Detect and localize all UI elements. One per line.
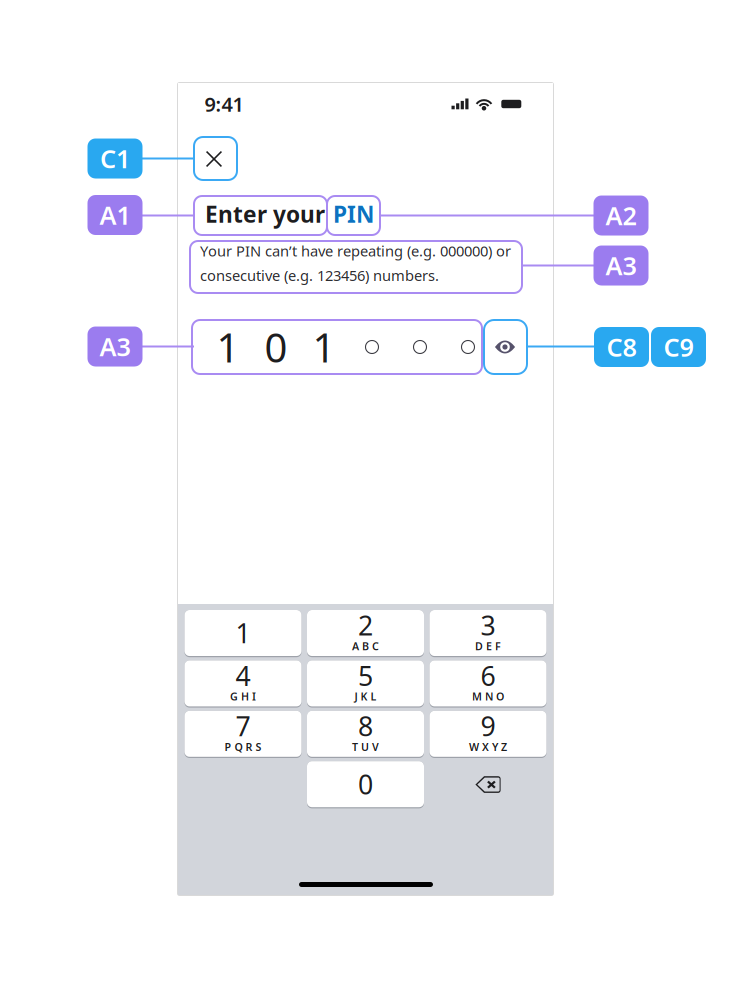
button[interactable]: 8 (307, 711, 424, 758)
staticText: G H I (230, 689, 256, 703)
staticText: 1 (235, 615, 250, 651)
staticText: M N O (472, 689, 504, 703)
button[interactable]: 6 (429, 660, 546, 708)
staticText: A B C (352, 639, 379, 653)
staticText: A3 (605, 249, 636, 282)
staticText: 5 (358, 658, 373, 693)
staticText: Enter your (205, 199, 325, 229)
staticText: 9 (480, 708, 495, 744)
staticText: PIN (333, 199, 374, 229)
staticText: 9:41 (204, 91, 243, 117)
staticText: A2 (605, 199, 636, 232)
staticText: W X Y Z (469, 740, 507, 754)
staticText: 2 (358, 607, 373, 643)
staticText: 1 (216, 320, 239, 373)
button[interactable]: Close (196, 141, 232, 177)
button[interactable]: 4 (184, 660, 301, 708)
staticText: consecutive (e.g. 123456) numbers. (200, 265, 439, 285)
staticText: P Q R S (224, 740, 261, 754)
staticText: 0 (264, 320, 287, 373)
staticText: 0 (358, 766, 373, 802)
staticText: C1 (100, 142, 130, 175)
staticText: T U V (352, 740, 379, 754)
staticText: 6 (480, 658, 495, 693)
staticText: J K L (354, 689, 376, 703)
button[interactable]: Delete (429, 761, 546, 808)
staticText: A1 (99, 198, 130, 232)
staticText: 3 (480, 607, 495, 643)
button[interactable]: 2 (307, 610, 424, 657)
staticText: D E F (475, 639, 501, 653)
button[interactable]: 7 (184, 711, 301, 758)
staticText: A3 (99, 330, 130, 363)
button[interactable]: 9 (429, 711, 546, 758)
button[interactable]: 5 (307, 660, 424, 708)
staticText: 4 (235, 658, 250, 693)
staticText: 1 (312, 320, 335, 373)
button[interactable]: 0 (307, 761, 424, 808)
staticText: C8 (606, 330, 636, 364)
staticText: 7 (235, 708, 250, 744)
staticText: C9 (663, 330, 693, 364)
button[interactable]: Show PIN (487, 329, 523, 365)
staticText: Your PIN can’t have repeating (e.g. 0000… (200, 241, 511, 260)
button[interactable]: 1 (184, 610, 301, 657)
button[interactable]: 3 (429, 610, 546, 657)
staticText: 8 (358, 708, 373, 744)
